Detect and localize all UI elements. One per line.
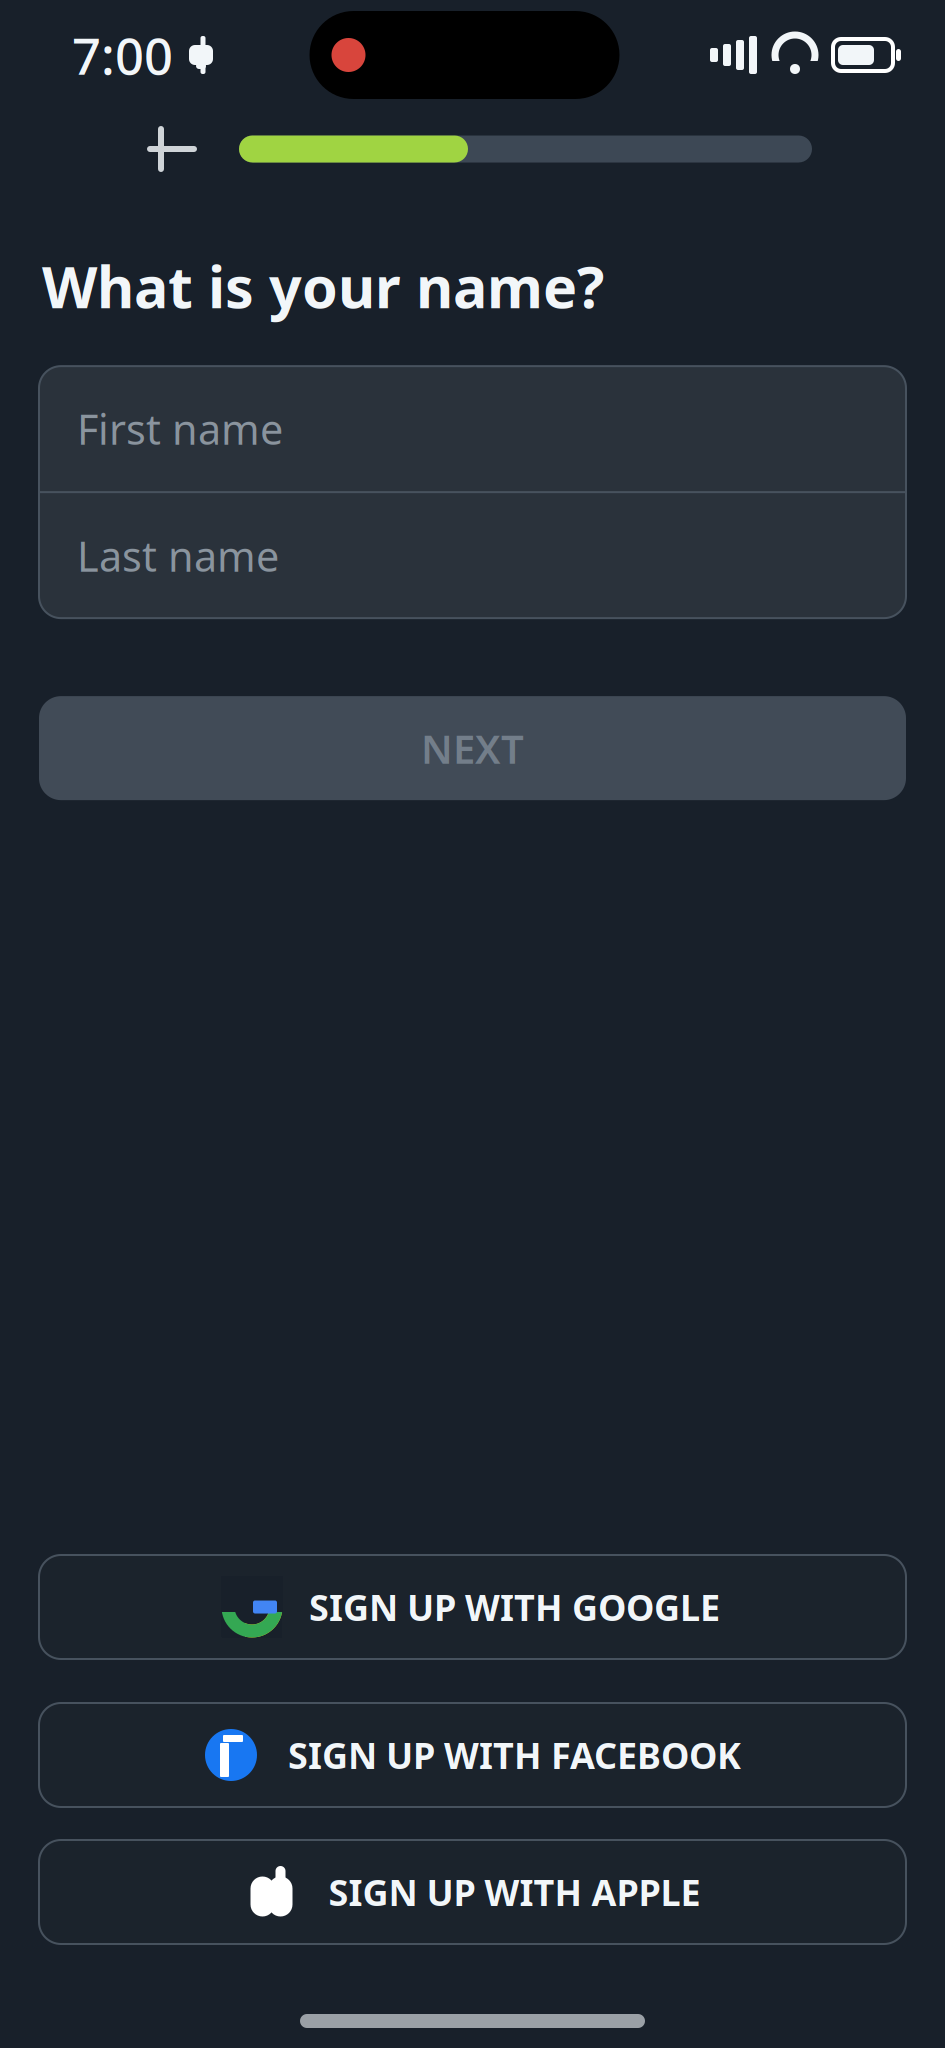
- staticText: First name: [77, 401, 283, 456]
- button[interactable]: NEXT: [39, 696, 906, 800]
- staticText: SIGN UP WITH APPLE: [328, 1868, 700, 1916]
- staticText: What is your name?: [42, 248, 604, 324]
- staticText: SIGN UP WITH FACEBOOK: [288, 1731, 741, 1779]
- button[interactable]: SIGN UP WITH GOOGLE: [39, 1555, 906, 1659]
- staticText: NEXT: [421, 722, 524, 775]
- button[interactable]: Last name: [39, 493, 906, 618]
- staticText: Last name: [77, 528, 279, 583]
- button[interactable]: SIGN UP WITH APPLE: [39, 1840, 906, 1944]
- staticText: SIGN UP WITH GOOGLE: [309, 1583, 720, 1631]
- button[interactable]: SIGN UP WITH FACEBOOK: [39, 1703, 906, 1807]
- button[interactable]: First name: [39, 366, 906, 491]
- button[interactable]: Back: [133, 110, 211, 188]
- staticText: 7:00: [72, 21, 173, 89]
